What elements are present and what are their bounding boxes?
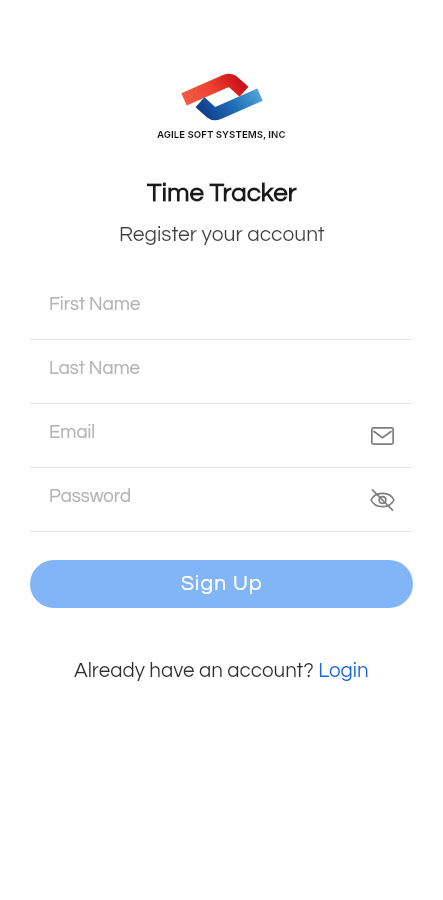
staticText: AGILE SOFT SYSTEMS, INC bbox=[157, 129, 286, 141]
button[interactable]: Password bbox=[30, 468, 413, 531]
button[interactable]: Email bbox=[367, 421, 397, 451]
staticText: Password bbox=[49, 487, 132, 506]
button[interactable]: Show password bbox=[367, 485, 397, 515]
button[interactable]: Already have an account? Login bbox=[74, 660, 369, 681]
staticText: First Name bbox=[49, 295, 141, 314]
staticText: Already have an account? Login bbox=[74, 660, 369, 681]
staticText: Sign Up bbox=[181, 573, 263, 595]
staticText: Email bbox=[49, 423, 96, 442]
button[interactable]: Sign Up bbox=[30, 560, 413, 608]
button[interactable]: Email bbox=[30, 404, 413, 467]
staticText: Register your account bbox=[119, 224, 325, 246]
button[interactable]: Last Name bbox=[30, 340, 413, 403]
button[interactable]: First Name bbox=[30, 276, 413, 339]
staticText: Time Tracker bbox=[147, 180, 297, 207]
staticText: Last Name bbox=[49, 359, 140, 378]
